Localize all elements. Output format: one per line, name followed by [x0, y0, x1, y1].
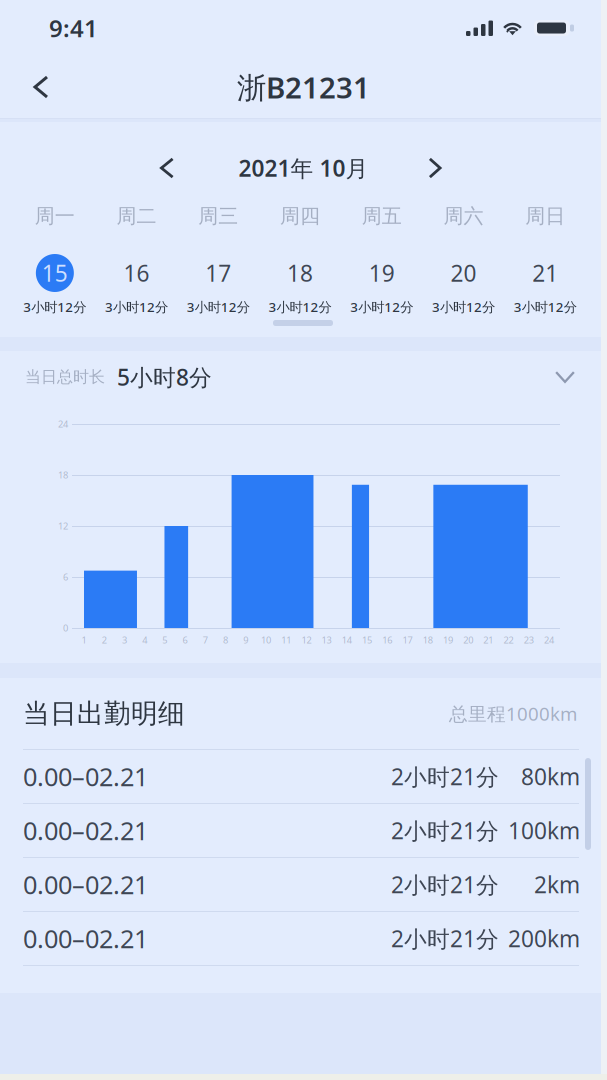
staticText: 15	[42, 258, 68, 288]
staticText: 14	[342, 634, 352, 646]
staticText: 21	[532, 258, 558, 288]
button[interactable]: 19	[341, 254, 423, 316]
staticText: 3小时12分	[350, 298, 413, 316]
staticText: 周三	[198, 204, 238, 228]
staticText: 3小时12分	[187, 298, 250, 316]
staticText: 100km	[508, 815, 580, 845]
staticText: 18	[58, 469, 68, 481]
staticText: 6	[63, 571, 68, 583]
staticText: 周五	[362, 204, 402, 228]
staticText: 20	[463, 634, 473, 646]
staticText: 15	[362, 634, 372, 646]
staticText: 2021年 10月	[238, 153, 368, 183]
button[interactable]: 15	[14, 254, 96, 316]
staticText: 周四	[280, 204, 320, 228]
staticText: 2小时21分	[391, 761, 499, 791]
staticText: 9	[243, 634, 248, 646]
staticText: 3小时12分	[432, 298, 495, 316]
button[interactable]: Collapse	[542, 354, 588, 400]
button[interactable]: 0.00–02.21	[0, 857, 607, 911]
staticText: 200km	[508, 923, 580, 953]
staticText: 17	[205, 258, 231, 288]
staticText: 当日出勤明细	[23, 697, 185, 730]
button[interactable]: 18	[259, 254, 341, 316]
staticText: 12	[58, 520, 68, 532]
staticText: 2小时21分	[391, 923, 499, 953]
button[interactable]: 20	[423, 254, 504, 316]
staticText: 24	[544, 634, 554, 646]
staticText: 0	[63, 622, 68, 634]
staticText: 7	[203, 634, 208, 646]
staticText: 24	[58, 418, 68, 430]
staticText: 4	[142, 634, 147, 646]
button[interactable]: 21	[504, 254, 586, 316]
button[interactable]: Back	[15, 61, 67, 113]
staticText: 0.00–02.21	[23, 814, 148, 847]
staticText: 3小时12分	[23, 298, 86, 316]
staticText: 2小时21分	[391, 815, 499, 845]
staticText: 80km	[521, 761, 580, 791]
staticText: 12	[301, 634, 311, 646]
staticText: 3	[122, 634, 127, 646]
staticText: 周一	[35, 204, 75, 228]
staticText: 10	[261, 634, 271, 646]
staticText: 周六	[443, 204, 483, 228]
staticText: 16	[382, 634, 392, 646]
staticText: 2小时21分	[391, 869, 499, 899]
staticText: 0.00–02.21	[23, 760, 148, 793]
button[interactable]: Next month	[412, 145, 458, 191]
staticText: 21	[483, 634, 493, 646]
button[interactable]: 17	[177, 254, 259, 316]
button[interactable]: 0.00–02.21	[0, 749, 607, 803]
staticText: 22	[504, 634, 514, 646]
button[interactable]: 0.00–02.21	[0, 803, 607, 857]
staticText: 13	[322, 634, 332, 646]
button[interactable]: Previous month	[144, 145, 190, 191]
staticText: 18	[287, 258, 313, 288]
staticText: 3小时12分	[268, 298, 331, 316]
staticText: 3小时12分	[105, 298, 168, 316]
staticText: 18	[423, 634, 433, 646]
staticText: 16	[124, 258, 150, 288]
staticText: 11	[281, 634, 291, 646]
staticText: 5小时8分	[117, 362, 212, 392]
staticText: 3小时12分	[514, 298, 577, 316]
staticText: 19	[369, 258, 395, 288]
staticText: 当日总时长	[25, 367, 105, 387]
staticText: 9:41	[49, 12, 98, 44]
staticText: 5	[162, 634, 167, 646]
staticText: 总里程1000km	[449, 701, 577, 726]
staticText: 19	[443, 634, 453, 646]
staticText: 0.00–02.21	[23, 922, 148, 955]
staticText: 浙B21231	[237, 67, 370, 106]
button[interactable]: 0.00–02.21	[0, 911, 607, 965]
staticText: 23	[524, 634, 534, 646]
staticText: 6	[183, 634, 188, 646]
staticText: 周日	[525, 204, 565, 228]
staticText: 2	[102, 634, 107, 646]
staticText: 17	[402, 634, 412, 646]
staticText: 2km	[534, 869, 580, 899]
staticText: 8	[223, 634, 228, 646]
staticText: 周二	[117, 204, 157, 228]
button[interactable]: 16	[96, 254, 177, 316]
staticText: 1	[81, 634, 86, 646]
staticText: 20	[450, 258, 476, 288]
staticText: 0.00–02.21	[23, 868, 148, 901]
